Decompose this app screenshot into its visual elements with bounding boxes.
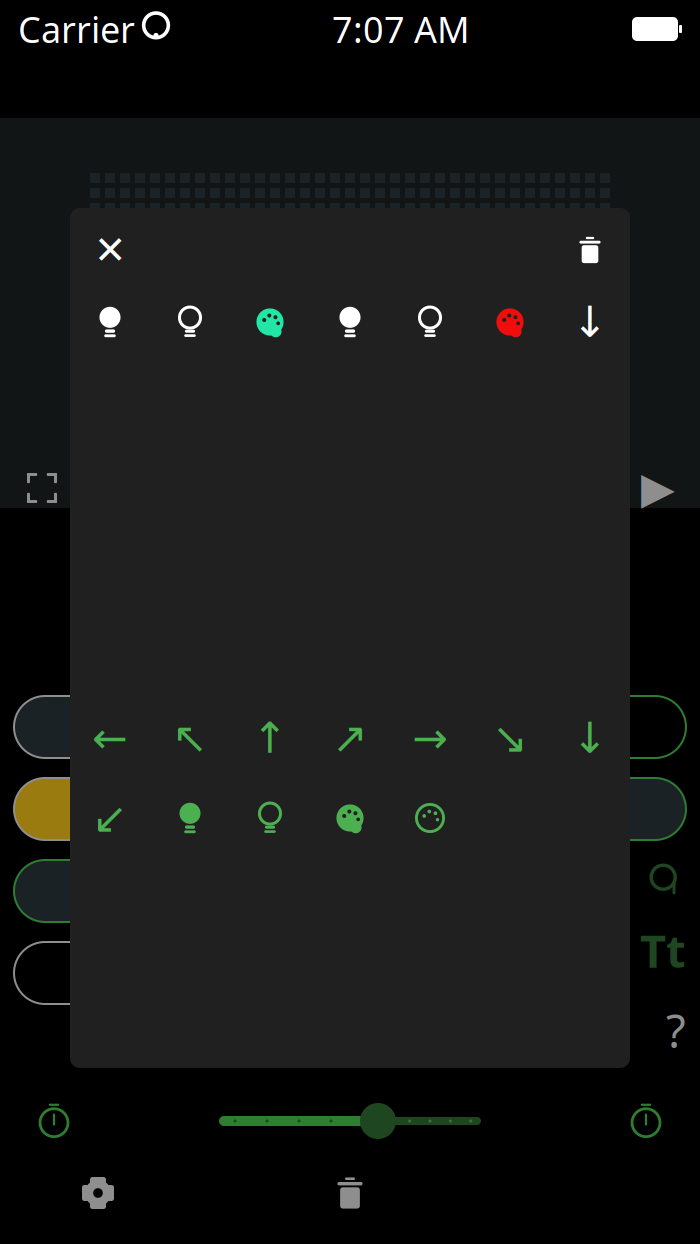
- staticText: 7:07 AM: [332, 5, 470, 53]
- button[interactable]: Move down right: [484, 712, 536, 764]
- button[interactable]: Bulb on: [84, 296, 136, 348]
- staticText: ↑: [252, 714, 288, 762]
- button[interactable]: Faster: [616, 1091, 676, 1151]
- staticText: Carrier: [18, 5, 135, 53]
- button[interactable]: Move down: [564, 296, 616, 348]
- button[interactable]: Move left: [84, 712, 136, 764]
- button[interactable]: Colour red: [484, 296, 536, 348]
- button[interactable]: Move right: [404, 712, 456, 764]
- button[interactable]: Bulb off: [164, 296, 216, 348]
- button[interactable]: Delete: [564, 224, 616, 276]
- staticText: ↖: [172, 714, 208, 762]
- staticText: ↗: [332, 714, 368, 762]
- staticText: fir: [114, 707, 144, 746]
- button[interactable]: Move up left: [164, 712, 216, 764]
- staticText: ↓: [572, 298, 608, 346]
- staticText: ←: [92, 714, 128, 762]
- staticText: ▶: [641, 463, 675, 513]
- button[interactable]: Light on: [164, 792, 216, 844]
- button[interactable]: Colour teal: [244, 296, 296, 348]
- staticText: Tt: [640, 920, 686, 980]
- button[interactable]: Light off: [244, 792, 296, 844]
- button[interactable]: Play: [630, 460, 686, 516]
- button[interactable]: Delete all: [314, 1157, 386, 1229]
- button[interactable]: Move down left: [84, 792, 136, 844]
- button[interactable]: Move up: [244, 712, 296, 764]
- button[interactable]: Pick colour: [404, 792, 456, 844]
- button[interactable]: Set colour: [324, 792, 376, 844]
- button[interactable]: Bulb off: [404, 296, 456, 348]
- staticText: ?: [666, 1000, 686, 1060]
- button[interactable]: Close: [84, 224, 136, 276]
- staticText: →: [412, 714, 448, 762]
- staticText: ✕: [94, 228, 126, 272]
- button[interactable]: Bulb on: [324, 296, 376, 348]
- button[interactable]: Move down: [564, 712, 616, 764]
- staticText: ↙: [92, 794, 128, 842]
- staticText: ↓: [572, 714, 608, 762]
- button[interactable]: Settings: [62, 1157, 134, 1229]
- button[interactable]: Slower: [24, 1091, 84, 1151]
- button[interactable]: Full screen: [14, 460, 70, 516]
- button[interactable]: Move up right: [324, 712, 376, 764]
- staticText: ↘: [492, 714, 528, 762]
